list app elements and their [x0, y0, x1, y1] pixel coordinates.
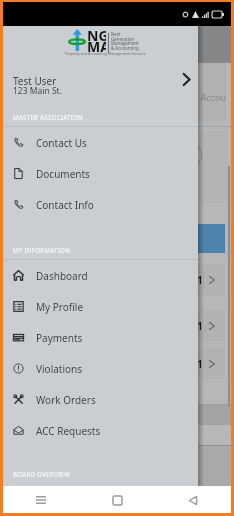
staticText: Payments [179, 490, 217, 501]
button[interactable]: My Profile [3, 291, 198, 322]
staticText: BOARD OVERVIEW [13, 470, 70, 478]
staticText: MY INFORMATION [13, 246, 71, 254]
staticText: Select Linked Account [143, 91, 226, 103]
staticText: Documents [36, 167, 90, 181]
button[interactable]: Violations [3, 353, 198, 384]
staticText: MA [87, 37, 106, 56]
staticText: Contact Us [36, 136, 87, 150]
button[interactable]: Work Orders [3, 384, 198, 415]
button[interactable]: Test User [3, 58, 198, 101]
staticText: 1 [197, 357, 203, 371]
staticText: MASTER ASSOCIATION [13, 113, 83, 121]
staticText: 1 [197, 319, 203, 333]
staticText: 1 [197, 273, 203, 287]
staticText: ACC Requests [36, 424, 101, 438]
staticText: Work Orders [36, 393, 96, 407]
staticText: Management [111, 40, 139, 46]
staticText: NG [87, 26, 106, 45]
button[interactable]: Home [104, 487, 130, 513]
button[interactable]: Contact Info [3, 189, 198, 220]
staticText: Property and Accounting Management Servi… [65, 51, 147, 56]
staticText: Next [111, 31, 139, 37]
staticText: Violations [36, 362, 83, 376]
button[interactable]: Dashboard [3, 260, 198, 291]
staticText: Generation [111, 36, 139, 42]
staticText: Dashboard [36, 269, 88, 283]
button[interactable]: ACC Requests [3, 415, 198, 446]
staticText: My Profile [36, 300, 84, 314]
button[interactable]: Documents [3, 158, 198, 189]
button[interactable]: Recents [28, 487, 54, 513]
button[interactable]: Contact Us [3, 127, 198, 158]
staticText: Payments [36, 331, 83, 345]
staticText: 123 Main St. [13, 85, 62, 97]
staticText: Contact Info [36, 198, 94, 212]
button[interactable]: Payments [3, 322, 198, 353]
button[interactable]: Back [180, 487, 206, 513]
staticText: & Accounting [111, 45, 139, 51]
staticText: Test User [13, 74, 57, 88]
